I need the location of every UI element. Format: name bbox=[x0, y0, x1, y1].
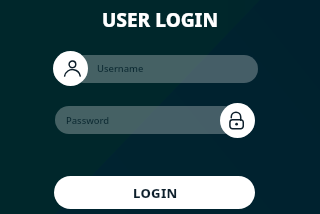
button[interactable]: LOGIN bbox=[54, 176, 255, 209]
staticText: USER LOGIN bbox=[102, 7, 219, 33]
staticText: LOGIN bbox=[133, 184, 178, 202]
staticText: Username bbox=[97, 62, 144, 75]
staticText: Password bbox=[66, 114, 110, 127]
button[interactable]: Show password bbox=[220, 103, 255, 138]
button[interactable]: Password bbox=[55, 106, 238, 134]
button[interactable]: Username bbox=[70, 55, 258, 83]
button[interactable]: Username bbox=[53, 51, 88, 86]
